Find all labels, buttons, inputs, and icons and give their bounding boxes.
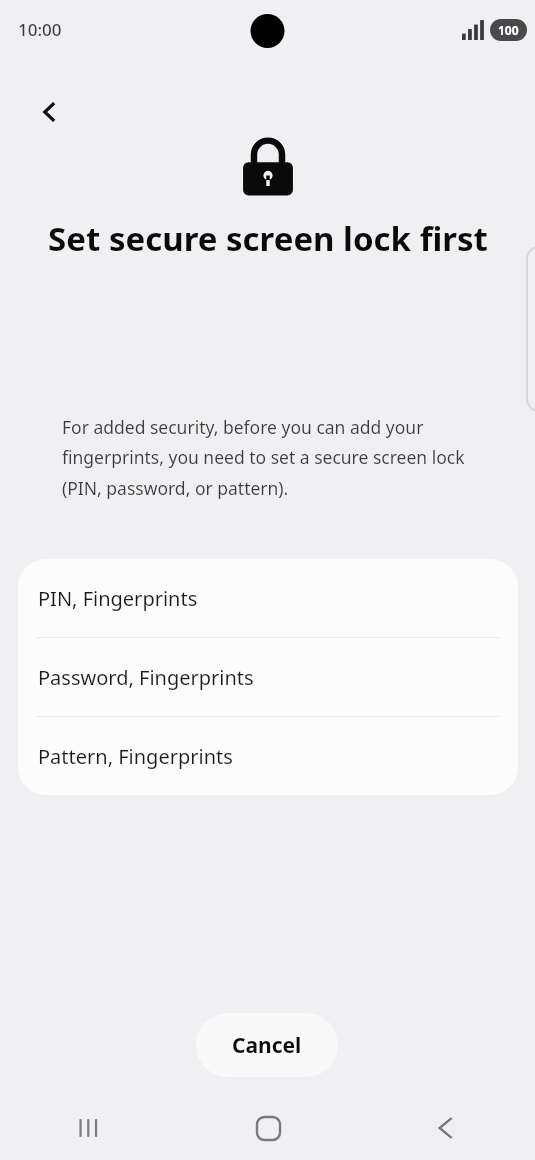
staticText: PIN, Fingerprints xyxy=(38,585,198,612)
staticText: Cancel xyxy=(232,1031,302,1060)
button[interactable]: Back xyxy=(357,1096,535,1160)
staticText: Password, Fingerprints xyxy=(38,664,254,691)
button[interactable]: PIN, Fingerprints xyxy=(18,559,518,637)
button[interactable]: Pattern, Fingerprints xyxy=(18,717,518,795)
button[interactable]: Home xyxy=(179,1096,357,1160)
button[interactable]: Password, Fingerprints xyxy=(18,638,518,716)
staticText: For added security, before you can add y… xyxy=(62,415,477,500)
button[interactable]: Back xyxy=(22,84,78,140)
staticText: 10:00 xyxy=(18,18,62,41)
staticText: Set secure screen lock first xyxy=(48,216,488,261)
button[interactable]: Cancel xyxy=(196,1013,338,1077)
staticText: Pattern, Fingerprints xyxy=(38,743,233,770)
button[interactable]: Recents xyxy=(0,1096,179,1160)
staticText: 100 xyxy=(498,22,519,38)
